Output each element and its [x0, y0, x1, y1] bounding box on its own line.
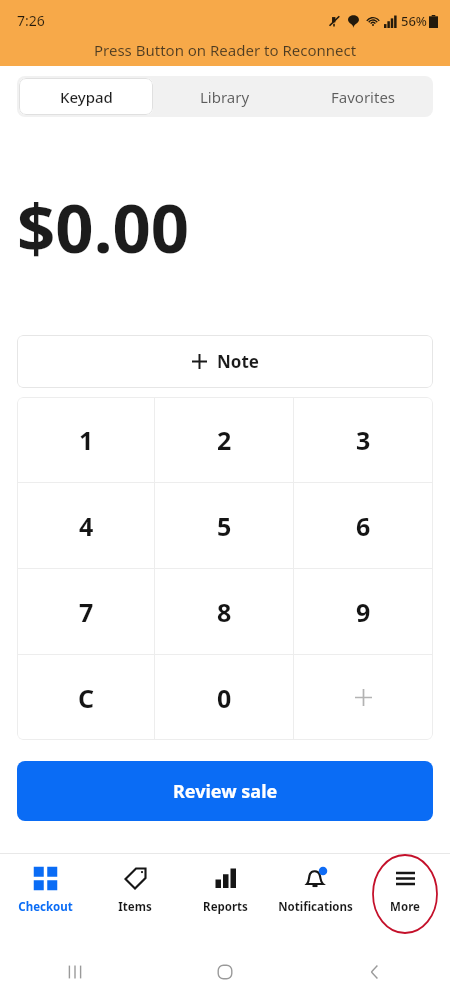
- staticText: 0: [217, 681, 232, 715]
- other: Back: [365, 962, 385, 982]
- staticText: Review sale: [173, 779, 278, 804]
- staticText: Keypad: [60, 87, 113, 107]
- staticText: 7:26: [17, 11, 45, 30]
- button[interactable]: 1: [17, 397, 155, 482]
- button[interactable]: 6: [294, 483, 433, 568]
- button[interactable]: 8: [155, 569, 294, 654]
- button[interactable]: Note: [17, 335, 433, 388]
- staticText: 9: [356, 595, 371, 629]
- staticText: 4: [79, 509, 94, 543]
- button[interactable]: 5: [155, 483, 294, 568]
- button[interactable]: Keypad: [19, 78, 153, 115]
- button[interactable]: Items: [90, 854, 180, 945]
- staticText: Note: [217, 350, 259, 373]
- button[interactable]: 2: [155, 397, 294, 482]
- button[interactable]: 9: [294, 569, 433, 654]
- staticText: Checkout: [18, 899, 73, 915]
- staticText: More: [390, 899, 420, 915]
- staticText: C: [78, 681, 95, 715]
- staticText: 2: [217, 423, 232, 457]
- other: Home: [215, 962, 235, 982]
- staticText: $0.00: [17, 181, 190, 272]
- staticText: Notifications: [278, 899, 353, 915]
- button[interactable]: Review sale: [17, 761, 433, 821]
- staticText: 6: [356, 509, 371, 543]
- staticText: 8: [217, 595, 232, 629]
- other: Recent apps: [65, 962, 85, 982]
- staticText: 56%: [401, 12, 427, 30]
- button[interactable]: Library: [157, 78, 292, 115]
- staticText: 3: [356, 423, 371, 457]
- staticText: Favorites: [331, 87, 396, 107]
- staticText: 1: [79, 423, 94, 457]
- button[interactable]: [294, 655, 433, 740]
- staticText: Library: [200, 87, 250, 107]
- button[interactable]: 4: [17, 483, 155, 568]
- button[interactable]: 3: [294, 397, 433, 482]
- staticText: 5: [217, 509, 232, 543]
- staticText: Reports: [203, 899, 248, 915]
- staticText: 7: [79, 595, 94, 629]
- button[interactable]: Favorites: [296, 78, 431, 115]
- button[interactable]: C: [17, 655, 155, 740]
- button[interactable]: 0: [155, 655, 294, 740]
- button[interactable]: Checkout: [0, 854, 90, 945]
- button[interactable]: 7: [17, 569, 155, 654]
- button[interactable]: More: [360, 854, 450, 945]
- button[interactable]: Notifications: [270, 854, 360, 945]
- button[interactable]: Reports: [180, 854, 270, 945]
- staticText: Press Button on Reader to Reconnect: [94, 40, 357, 60]
- staticText: Items: [118, 899, 152, 915]
